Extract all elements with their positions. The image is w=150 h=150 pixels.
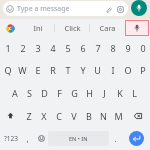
- button[interactable]: I: [105, 59, 120, 81]
- button[interactable]: Voice input: [125, 20, 149, 36]
- button[interactable]: Cara: [90, 19, 124, 37]
- button[interactable]: 0: [135, 37, 150, 59]
- staticText: 9: [125, 42, 131, 54]
- button[interactable]: Y: [75, 59, 90, 81]
- button[interactable]: T: [60, 59, 75, 81]
- staticText: 4: [50, 42, 56, 54]
- button[interactable]: K: [112, 81, 127, 104]
- button[interactable]: Z: [21, 104, 36, 127]
- button[interactable]: R: [45, 59, 60, 81]
- button[interactable]: C: [51, 104, 66, 127]
- button[interactable]: V: [66, 104, 81, 127]
- staticText: 7: [95, 42, 101, 54]
- staticText: X: [41, 110, 47, 122]
- button[interactable]: B: [81, 104, 96, 127]
- button[interactable]: 7: [90, 37, 105, 59]
- button[interactable]: Q: [0, 59, 15, 81]
- staticText: S: [27, 87, 32, 99]
- button[interactable]: Type a message: [3, 1, 128, 16]
- staticText: V: [71, 110, 77, 122]
- staticText: J: [103, 87, 106, 99]
- button[interactable]: N: [96, 104, 111, 127]
- button[interactable]: U: [90, 59, 105, 81]
- staticText: EN • IN: [69, 135, 88, 142]
- button[interactable]: Ini: [21, 19, 54, 37]
- staticText: ,: [26, 133, 29, 144]
- button[interactable]: Enter: [129, 131, 144, 146]
- button[interactable]: Shift: [0, 104, 21, 127]
- staticText: 1: [5, 42, 11, 54]
- staticText: L: [132, 87, 137, 99]
- staticText: F: [57, 87, 62, 99]
- button[interactable]: 9: [120, 37, 135, 59]
- button[interactable]: 5: [60, 37, 75, 59]
- staticText: C: [56, 110, 62, 122]
- staticText: Click: [64, 23, 81, 33]
- button[interactable]: D: [37, 81, 52, 104]
- button[interactable]: H: [82, 81, 97, 104]
- button[interactable]: J: [97, 81, 112, 104]
- button[interactable]: 4: [45, 37, 60, 59]
- button[interactable]: E: [30, 59, 45, 81]
- staticText: 3: [35, 42, 41, 54]
- button[interactable]: ,: [21, 127, 34, 150]
- button[interactable]: Click: [55, 19, 89, 37]
- button[interactable]: A: [7, 81, 22, 104]
- button[interactable]: Google: [0, 19, 21, 37]
- staticText: Cara: [99, 23, 116, 33]
- staticText: I: [111, 64, 115, 76]
- staticText: 2: [20, 42, 26, 54]
- staticText: Y: [80, 64, 86, 76]
- button[interactable]: X: [36, 104, 51, 127]
- button[interactable]: 2: [15, 37, 30, 59]
- staticText: .: [114, 133, 117, 144]
- staticText: 8: [110, 42, 116, 54]
- button[interactable]: ?123: [0, 127, 21, 150]
- button[interactable]: Space: [48, 131, 109, 146]
- staticText: K: [117, 87, 123, 99]
- staticText: Q: [4, 64, 12, 76]
- staticText: ?123: [4, 134, 18, 143]
- button[interactable]: Backspace: [126, 104, 150, 127]
- staticText: R: [50, 64, 56, 76]
- staticText: N: [100, 110, 107, 122]
- button[interactable]: 8: [105, 37, 120, 59]
- button[interactable]: W: [15, 59, 30, 81]
- button[interactable]: S: [22, 81, 37, 104]
- button[interactable]: Voice message: [131, 0, 147, 16]
- staticText: G: [71, 87, 78, 99]
- staticText: M: [114, 110, 123, 122]
- button[interactable]: Emoji: [34, 127, 48, 150]
- staticText: Z: [26, 110, 32, 122]
- button[interactable]: Camera: [115, 4, 125, 14]
- button[interactable]: 3: [30, 37, 45, 59]
- staticText: Ini: [33, 23, 43, 33]
- button[interactable]: G: [67, 81, 82, 104]
- button[interactable]: 6: [75, 37, 90, 59]
- staticText: 0: [140, 42, 146, 54]
- button[interactable]: F: [52, 81, 67, 104]
- staticText: P: [140, 64, 146, 76]
- staticText: A: [12, 87, 18, 99]
- staticText: 6: [80, 42, 86, 54]
- staticText: W: [18, 64, 27, 76]
- staticText: U: [94, 64, 101, 76]
- button[interactable]: O: [120, 59, 135, 81]
- staticText: O: [124, 64, 132, 76]
- button[interactable]: L: [127, 81, 142, 104]
- staticText: B: [86, 110, 92, 122]
- button[interactable]: Attach: [103, 4, 113, 14]
- button[interactable]: P: [135, 59, 150, 81]
- button[interactable]: M: [111, 104, 126, 127]
- staticText: Type a message: [17, 4, 70, 14]
- staticText: 5: [65, 42, 71, 54]
- staticText: H: [86, 87, 93, 99]
- staticText: D: [41, 87, 48, 99]
- staticText: T: [65, 64, 71, 76]
- button[interactable]: 1: [0, 37, 15, 59]
- button[interactable]: .: [109, 127, 122, 150]
- staticText: E: [35, 64, 41, 76]
